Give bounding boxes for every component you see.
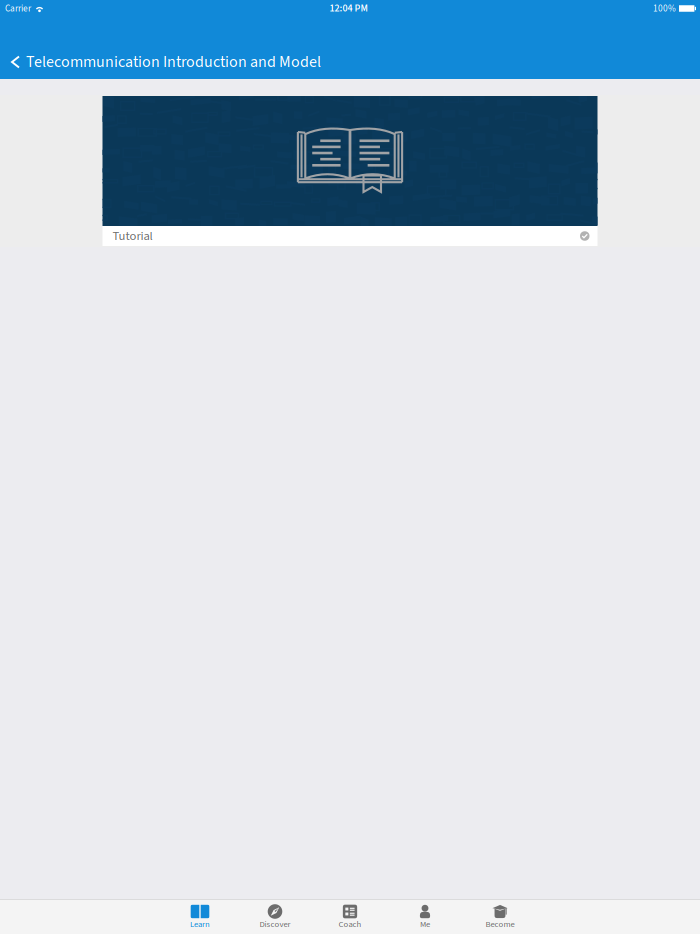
- button[interactable]: Telecommunication Introduction and Model: [0, 50, 331, 74]
- button[interactable]: Me: [387, 899, 462, 934]
- staticText: Carrier: [5, 2, 31, 15]
- staticText: Become: [485, 918, 514, 930]
- staticText: 100%: [653, 2, 676, 15]
- button[interactable]: Tutorial: [102, 96, 597, 246]
- staticText: Telecommunication Introduction and Model: [26, 51, 321, 73]
- staticText: Me: [420, 918, 430, 930]
- staticText: 12:04 PM: [329, 1, 367, 16]
- button[interactable]: Discover: [237, 899, 312, 934]
- staticText: Coach: [338, 918, 361, 930]
- staticText: Discover: [259, 918, 290, 930]
- button[interactable]: Become: [462, 899, 537, 934]
- button[interactable]: Learn: [162, 899, 237, 934]
- staticText: Learn: [190, 918, 210, 930]
- button[interactable]: Coach: [312, 899, 387, 934]
- staticText: Tutorial: [112, 227, 152, 245]
